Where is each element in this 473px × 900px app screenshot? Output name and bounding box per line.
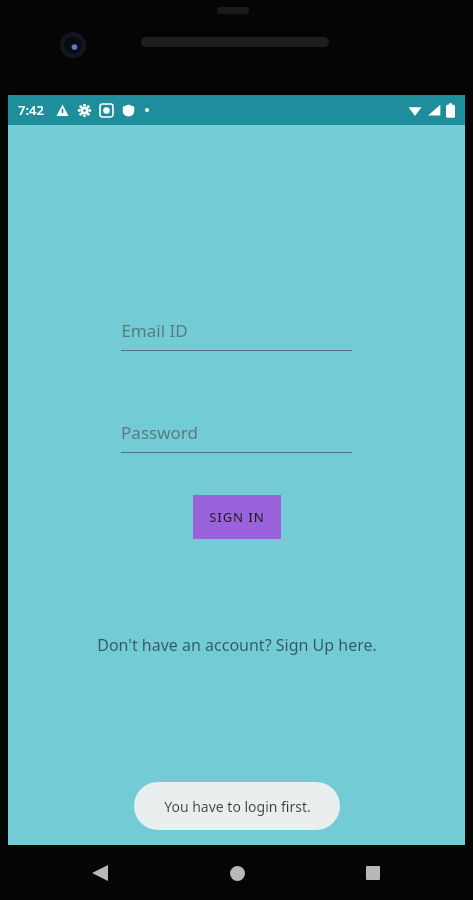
staticText: SIGN IN [209,508,265,526]
button[interactable]: Email ID [121,317,352,351]
button[interactable]: Recent apps [351,851,395,895]
button[interactable]: Password [121,419,352,453]
staticText: You have to login first. [164,797,311,816]
staticText: 7:42 [18,101,44,119]
staticText: Don't have an account? Sign Up here. [97,634,377,656]
button[interactable]: Back [78,851,122,895]
button[interactable]: SIGN IN [193,495,281,539]
staticText: Password [121,421,198,444]
button[interactable]: Don't have an account? Sign Up here. [97,634,377,656]
staticText: Email ID [121,319,188,342]
button[interactable]: Home [215,851,259,895]
